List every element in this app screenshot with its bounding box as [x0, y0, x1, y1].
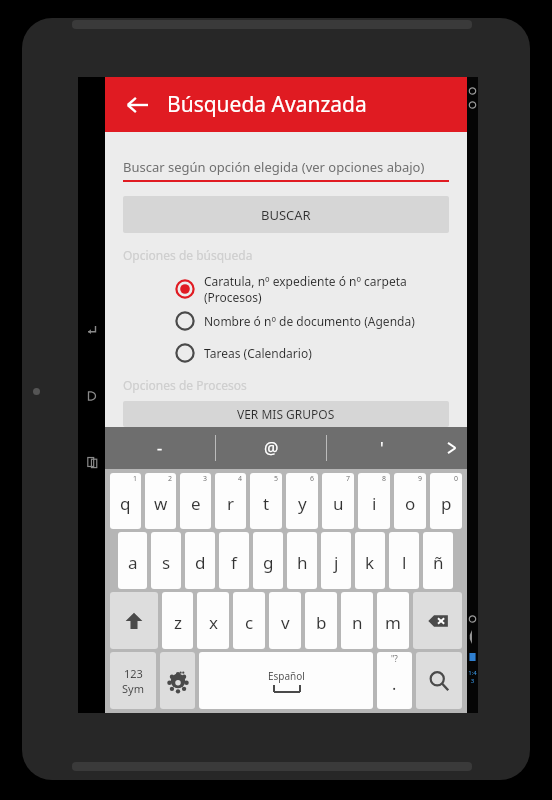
staticText: 1 [133, 474, 138, 484]
staticText: u [333, 492, 344, 515]
button[interactable]: Buscar según opción elegida (ver opcione… [123, 158, 449, 182]
button[interactable]: l [389, 532, 419, 589]
button[interactable]: Tareas (Calendario) [105, 337, 467, 369]
staticText: Sym [122, 681, 144, 696]
staticText: 123 [124, 666, 143, 681]
button[interactable]: @ [216, 427, 326, 469]
staticText: Tareas (Calendario) [204, 345, 312, 361]
button[interactable]: Shift [110, 592, 158, 649]
button[interactable]: ' [327, 427, 437, 469]
staticText: t [263, 492, 270, 515]
staticText: f [231, 551, 237, 574]
staticText: 7 [346, 474, 351, 484]
staticText: Nombre ó nº de documento (Agenda) [204, 313, 415, 329]
button[interactable]: 1 [110, 473, 141, 529]
staticText: 5 [274, 474, 279, 484]
button[interactable]: x [197, 592, 229, 649]
staticText: Caratula, nº expediente ó nº carpeta (Pr… [204, 273, 467, 305]
button[interactable]: 9 [394, 473, 426, 529]
staticText: l [402, 551, 407, 574]
staticText: v [281, 611, 290, 634]
button[interactable]: Backspace [413, 592, 462, 649]
staticText: k [365, 551, 375, 574]
button[interactable]: - [105, 427, 215, 469]
button[interactable]: 4 [215, 473, 246, 529]
button[interactable]: More suggestions [437, 427, 467, 469]
button[interactable]: c [233, 592, 265, 649]
staticText: 2 [168, 474, 173, 484]
button[interactable]: m [377, 592, 409, 649]
button[interactable]: 6 [286, 473, 318, 529]
staticText: Buscar según opción elegida (ver opcione… [123, 158, 425, 176]
button[interactable]: s [151, 532, 181, 589]
staticText: g [263, 551, 274, 574]
button[interactable]: b [305, 592, 337, 649]
staticText: "? [391, 653, 398, 664]
staticText: ñ [433, 551, 444, 574]
staticText: y [298, 492, 307, 515]
staticText: p [441, 492, 452, 515]
staticText: . [392, 673, 397, 695]
button[interactable]: v [269, 592, 301, 649]
staticText: ' [380, 437, 384, 459]
button[interactable]: Settings [160, 652, 195, 709]
staticText: h [297, 551, 308, 574]
staticText: b [316, 611, 327, 634]
button[interactable]: n [341, 592, 373, 649]
staticText: z [174, 611, 182, 634]
staticText: s [162, 551, 171, 574]
staticText: VER MIS GRUPOS [237, 406, 335, 422]
staticText: 1:43 [467, 669, 478, 685]
staticText: d [195, 551, 206, 574]
button[interactable]: 0 [430, 473, 462, 529]
staticText: Español [268, 669, 305, 683]
button[interactable]: d [185, 532, 215, 589]
button[interactable]: z [162, 592, 193, 649]
button[interactable]: "? [377, 652, 412, 709]
staticText: 8 [382, 474, 387, 484]
staticText: 0 [454, 474, 459, 484]
button[interactable]: ñ [423, 532, 453, 589]
button[interactable]: 8 [358, 473, 390, 529]
staticText: @ [264, 437, 279, 459]
button[interactable]: VER MIS GRUPOS [123, 401, 449, 427]
button[interactable]: 3 [180, 473, 211, 529]
staticText: j [334, 551, 339, 574]
staticText: 4 [238, 474, 243, 484]
button[interactable]: Search [416, 652, 462, 709]
staticText: 9 [418, 474, 423, 484]
button[interactable]: Español [199, 652, 373, 709]
button[interactable]: j [321, 532, 351, 589]
button[interactable]: 2 [145, 473, 176, 529]
button[interactable]: g [253, 532, 283, 589]
button[interactable]: Back [117, 85, 157, 125]
staticText: w [154, 492, 168, 515]
button[interactable]: 5 [250, 473, 282, 529]
staticText: Opciones de Procesos [123, 377, 247, 393]
staticText: o [405, 492, 416, 515]
button[interactable]: f [219, 532, 249, 589]
button[interactable]: BUSCAR [123, 196, 449, 233]
button[interactable]: Back [85, 323, 99, 337]
button[interactable]: 123 [110, 652, 156, 709]
staticText: m [385, 611, 401, 634]
button[interactable]: Nombre ó nº de documento (Agenda) [105, 305, 467, 337]
button[interactable]: k [355, 532, 385, 589]
staticText: 6 [310, 474, 315, 484]
staticText: c [245, 611, 254, 634]
button[interactable]: a [118, 532, 147, 589]
button[interactable]: 7 [322, 473, 354, 529]
staticText: a [128, 551, 138, 574]
staticText: e [191, 492, 201, 515]
staticText: 3 [203, 474, 208, 484]
button[interactable]: Home [85, 389, 99, 403]
button[interactable]: h [287, 532, 317, 589]
staticText: r [227, 492, 235, 515]
staticText: i [372, 492, 377, 515]
button[interactable]: Caratula, nº expediente ó nº carpeta (Pr… [105, 273, 467, 305]
staticText: Búsqueda Avanzada [167, 90, 367, 119]
staticText: - [157, 437, 163, 459]
button[interactable]: Recent apps [85, 455, 99, 469]
staticText: n [352, 611, 363, 634]
staticText: x [209, 611, 218, 634]
